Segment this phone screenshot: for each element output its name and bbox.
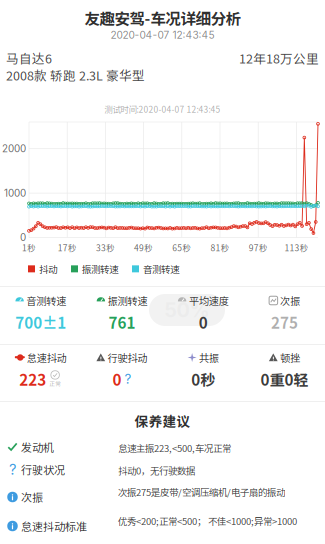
staticText: 平均速度 xyxy=(189,293,229,308)
staticText: 怠速抖动 xyxy=(27,350,67,365)
staticText: 1秒 xyxy=(22,241,36,254)
staticText: 2020-04-07 12:43:45 xyxy=(110,29,214,41)
staticText: 振测转速 xyxy=(107,293,147,308)
staticText: 33秒 xyxy=(96,241,115,254)
staticText: 0 xyxy=(199,311,208,333)
staticText: 81秒 xyxy=(210,241,229,254)
staticText: 次振275是皮带/空调压缩机/电子扇的振动 xyxy=(118,485,285,499)
staticText: 优秀<200;正常<500； 不佳<1000;异常>1000 xyxy=(118,514,297,528)
staticText: 振测转速 xyxy=(82,262,118,276)
staticText: 测试时间:2020-04-07 12:43:45 xyxy=(104,103,220,115)
staticText: 700±1 xyxy=(15,311,66,333)
staticText: 音测转速 xyxy=(26,293,66,308)
staticText: 97秒 xyxy=(249,241,268,254)
staticText: 发动机 xyxy=(21,439,54,455)
staticText: 50% xyxy=(164,298,209,322)
staticText: 行驶抖动 xyxy=(107,350,147,365)
staticText: 2000 xyxy=(2,143,26,155)
staticText: 12年18万公里 xyxy=(239,49,319,67)
staticText: 共振 xyxy=(199,350,219,365)
staticText: 65秒 xyxy=(172,241,191,254)
staticText: 1000 xyxy=(4,187,26,199)
staticText: 音测转速 xyxy=(143,262,179,276)
staticText: 0秒 xyxy=(191,368,215,390)
staticText: 行驶状况 xyxy=(21,461,65,477)
staticText: 保养建议 xyxy=(134,411,190,431)
staticText: 抖动0，无行驶数据 xyxy=(118,463,195,477)
staticText: 怠速抖动标准 xyxy=(21,518,87,534)
staticText: 次振 xyxy=(280,293,300,308)
staticText: 2008款 轿跑 2.3L 豪华型 xyxy=(6,66,145,84)
staticText: ? xyxy=(9,461,16,478)
staticText: 49秒 xyxy=(134,241,153,254)
staticText: 0 xyxy=(112,368,121,390)
staticText: 次振 xyxy=(21,489,43,505)
staticText: 抖动 xyxy=(39,262,57,276)
staticText: 0 xyxy=(20,231,26,243)
staticText: ? xyxy=(124,371,131,387)
staticText: 正常 xyxy=(49,379,61,387)
staticText: 0重0轻 xyxy=(260,368,308,390)
staticText: 马自达6 xyxy=(6,49,52,67)
staticText: 113秒 xyxy=(284,241,308,254)
staticText: 顿挫 xyxy=(280,350,300,365)
staticText: 275 xyxy=(271,311,298,333)
staticText: 友趣安驾-车况详细分析 xyxy=(84,7,240,29)
staticText: 223 xyxy=(19,368,46,390)
staticText: 17秒 xyxy=(58,241,77,254)
staticText: 761 xyxy=(108,311,135,333)
staticText: 怠速主振223,<500,车况正常 xyxy=(118,441,231,455)
